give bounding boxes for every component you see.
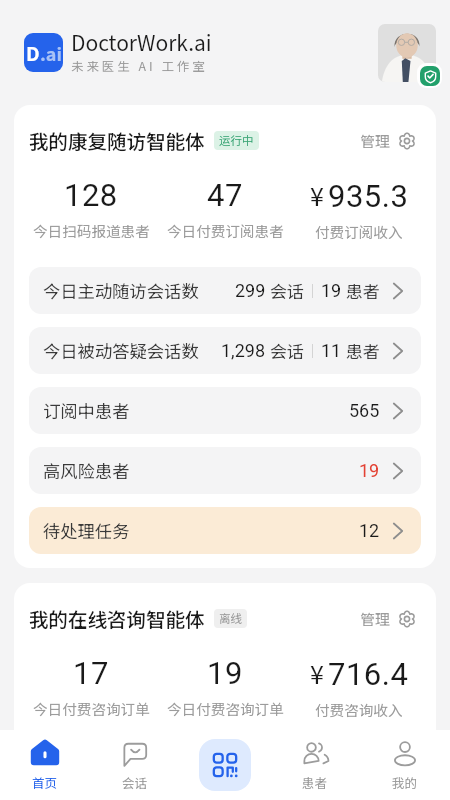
button[interactable]: Scan QR code [199,739,251,791]
staticText: 会话 [122,773,148,791]
staticText: 128 [64,177,118,213]
staticText: 患者 [342,278,380,303]
staticText: 565 [349,400,380,421]
staticText: .ai [40,40,62,66]
staticText: 1,298 [221,340,266,361]
staticText: 今日被动答疑会话数 [43,338,199,363]
staticText: 17 [73,655,109,691]
staticText: 会话 [266,278,304,303]
staticText: 患者 [302,773,328,791]
button[interactable]: 我的 [360,730,450,800]
button[interactable]: 首页 [0,730,90,800]
staticText: 19 [321,280,342,301]
staticText: 我的康复随访智能体 [29,126,205,154]
button[interactable]: 管理 [360,608,421,629]
button[interactable]: 今日咨询订单 [29,745,421,792]
button[interactable]: 今日主动随访会话数 [29,267,421,314]
button[interactable]: 今日被动答疑会话数 [29,327,421,374]
staticText: 935.3 [328,178,409,214]
staticText: DoctorWork.ai [71,27,212,57]
staticText: 我的 [392,773,418,791]
button[interactable]: Verified doctor [420,66,440,86]
staticText: 19 [207,655,243,691]
staticText: ¥ [310,655,324,691]
staticText: 付费订阅收入 [315,221,403,242]
staticText: 患者 [342,338,380,363]
staticText: 今日主动随访会话数 [43,278,199,303]
staticText: 47 [207,177,243,213]
staticText: 299 [235,280,266,301]
button[interactable]: 订阅中患者 [29,387,421,434]
staticText: 今日扫码报道患者 [33,220,150,241]
staticText: 首页 [32,773,58,791]
staticText: D [26,39,40,67]
staticText: 离线 [219,610,242,627]
staticText: 会话 [266,338,304,363]
button[interactable]: 管理 [360,130,421,151]
staticText: 今日付费咨询订单 [167,698,284,719]
staticText: 高风险患者 [43,458,130,483]
button[interactable]: 待处理任务 [29,507,421,554]
button[interactable]: 高风险患者 [29,447,421,494]
staticText: 19 [359,460,380,481]
staticText: 今日咨询订单 [43,756,147,781]
button[interactable]: 患者 [270,730,360,800]
staticText: 716.4 [328,656,409,692]
staticText: 未来医生 AI 工作室 [71,57,208,75]
staticText: 订阅中患者 [43,398,130,423]
button[interactable]: Profile [378,24,436,82]
staticText: 运行中 [219,132,254,149]
staticText: 11 [321,340,342,361]
staticText: 今日付费订阅患者 [167,220,284,241]
staticText: 管理 [360,130,390,151]
staticText: 今日付费咨询订单 [33,698,150,719]
staticText: ¥ [310,177,324,213]
button[interactable]: DoctorWork.ai logo [24,33,63,72]
staticText: 付费咨询收入 [315,699,403,720]
staticText: 管理 [360,608,390,629]
button[interactable]: 会话 [90,730,180,800]
staticText: 12 [359,520,380,541]
staticText: 待处理任务 [43,518,130,543]
staticText: 我的在线咨询智能体 [29,604,205,632]
